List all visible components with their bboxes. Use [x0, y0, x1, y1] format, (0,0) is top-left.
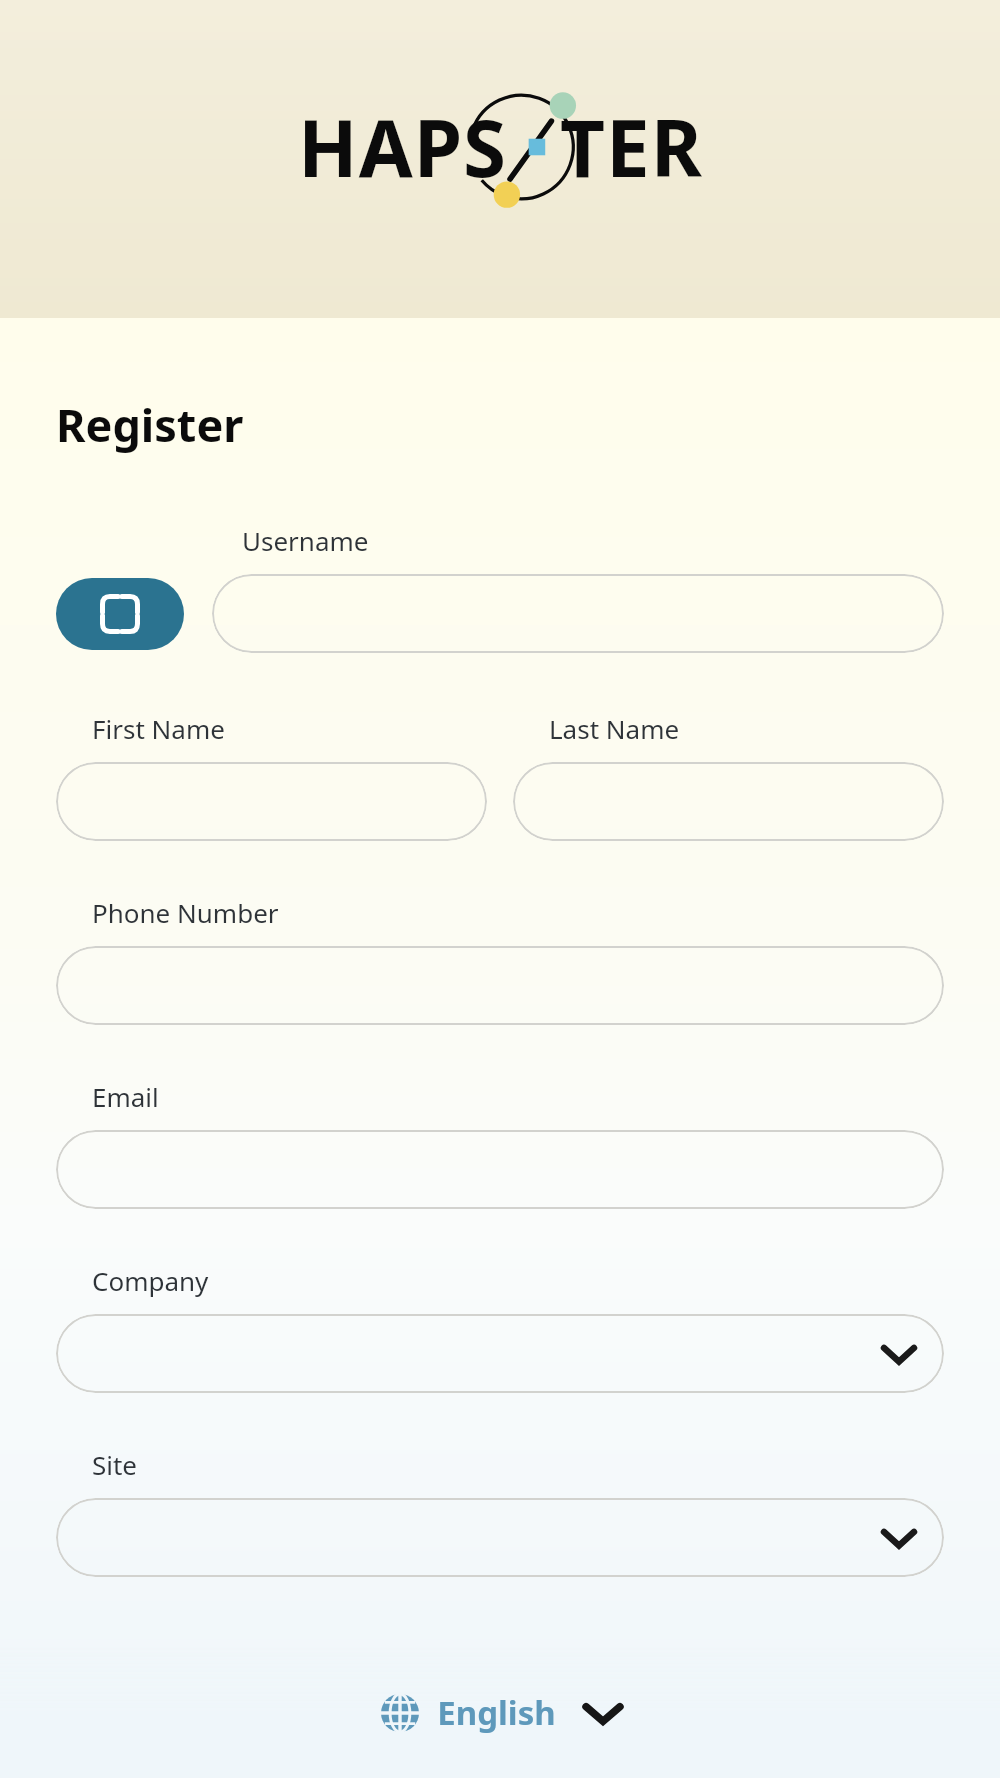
- staticText: Email: [92, 1079, 159, 1114]
- staticText: Site: [92, 1447, 138, 1482]
- button[interactable]: Scan code: [56, 578, 184, 650]
- staticText: Username: [242, 523, 369, 558]
- button[interactable]: [56, 1498, 944, 1577]
- staticText: TER: [560, 94, 703, 200]
- staticText: First Name: [92, 711, 225, 746]
- button[interactable]: [513, 762, 944, 841]
- button[interactable]: [56, 1314, 944, 1393]
- staticText: Register: [56, 394, 244, 455]
- staticText: HAPS: [298, 94, 508, 200]
- staticText: English: [437, 1690, 556, 1735]
- button[interactable]: English: [381, 1690, 620, 1735]
- button[interactable]: [56, 762, 487, 841]
- staticText: Phone Number: [92, 895, 279, 930]
- button[interactable]: [56, 1130, 944, 1209]
- button[interactable]: [212, 574, 944, 653]
- staticText: Last Name: [549, 711, 680, 746]
- staticText: Company: [92, 1263, 209, 1298]
- button[interactable]: [56, 946, 944, 1025]
